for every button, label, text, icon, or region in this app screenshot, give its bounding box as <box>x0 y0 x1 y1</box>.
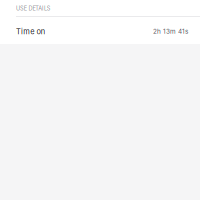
staticText: USE DETAILS <box>16 5 51 12</box>
staticText: Time on <box>16 27 45 36</box>
staticText: 2h 13m 41s <box>153 28 188 35</box>
button[interactable]: Time on <box>0 17 200 44</box>
